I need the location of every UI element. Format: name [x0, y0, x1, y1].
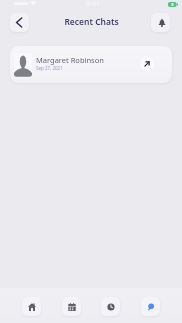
button[interactable]: Calendar: [62, 297, 81, 316]
button[interactable]: Chats: [141, 297, 160, 316]
button[interactable]: Notifications: [151, 13, 170, 32]
staticText: Recent Chats: [64, 16, 119, 28]
staticText: Margaret Robinson: [36, 55, 104, 65]
button[interactable]: Margaret Robinson: [10, 46, 172, 83]
button[interactable]: Back: [10, 13, 29, 32]
button[interactable]: Open chat: [140, 57, 154, 71]
button[interactable]: Activity: [101, 297, 120, 316]
staticText: 9:41: [86, 0, 100, 9]
staticText: Sep 27, 2021: [36, 65, 63, 71]
button[interactable]: Home: [22, 297, 41, 316]
